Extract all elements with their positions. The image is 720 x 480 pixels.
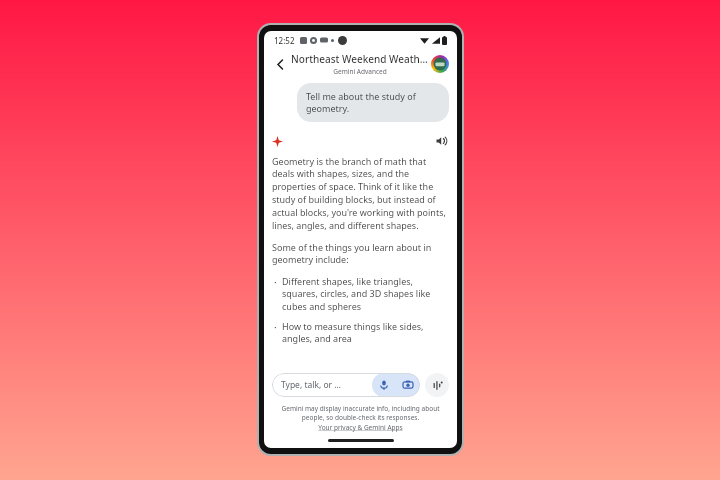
staticText: · [274, 320, 277, 334]
button[interactable]: Type, talk, or … [272, 373, 420, 397]
button[interactable]: Tell me about the study of geometry. [297, 83, 449, 122]
button[interactable]: Account [429, 53, 451, 75]
staticText: · [274, 275, 277, 289]
staticText: Your privacy & Gemini Apps [318, 423, 403, 432]
staticText: Gemini Advanced [333, 67, 387, 76]
staticText: How to measure things like sides, angles… [282, 320, 449, 345]
button[interactable]: Voice input [372, 373, 396, 397]
staticText: Some of the things you learn about in ge… [272, 241, 449, 266]
button[interactable]: Audio waveform [425, 373, 449, 397]
staticText: Geometry is the branch of math that deal… [272, 155, 449, 232]
staticText: Gemini may display inaccurate info, incl… [274, 404, 447, 422]
button[interactable]: Back [270, 54, 290, 74]
staticText: Tell me about the study of geometry. [306, 90, 440, 115]
button[interactable]: Read aloud [433, 133, 449, 149]
staticText: Different shapes, like triangles, square… [282, 275, 449, 313]
staticText: 12:52 [274, 35, 295, 46]
button[interactable]: Camera [396, 373, 420, 397]
button[interactable]: Your privacy & Gemini Apps [318, 423, 403, 432]
staticText: Type, talk, or … [281, 379, 342, 391]
staticText: Northeast Weekend Weath… [291, 52, 428, 66]
